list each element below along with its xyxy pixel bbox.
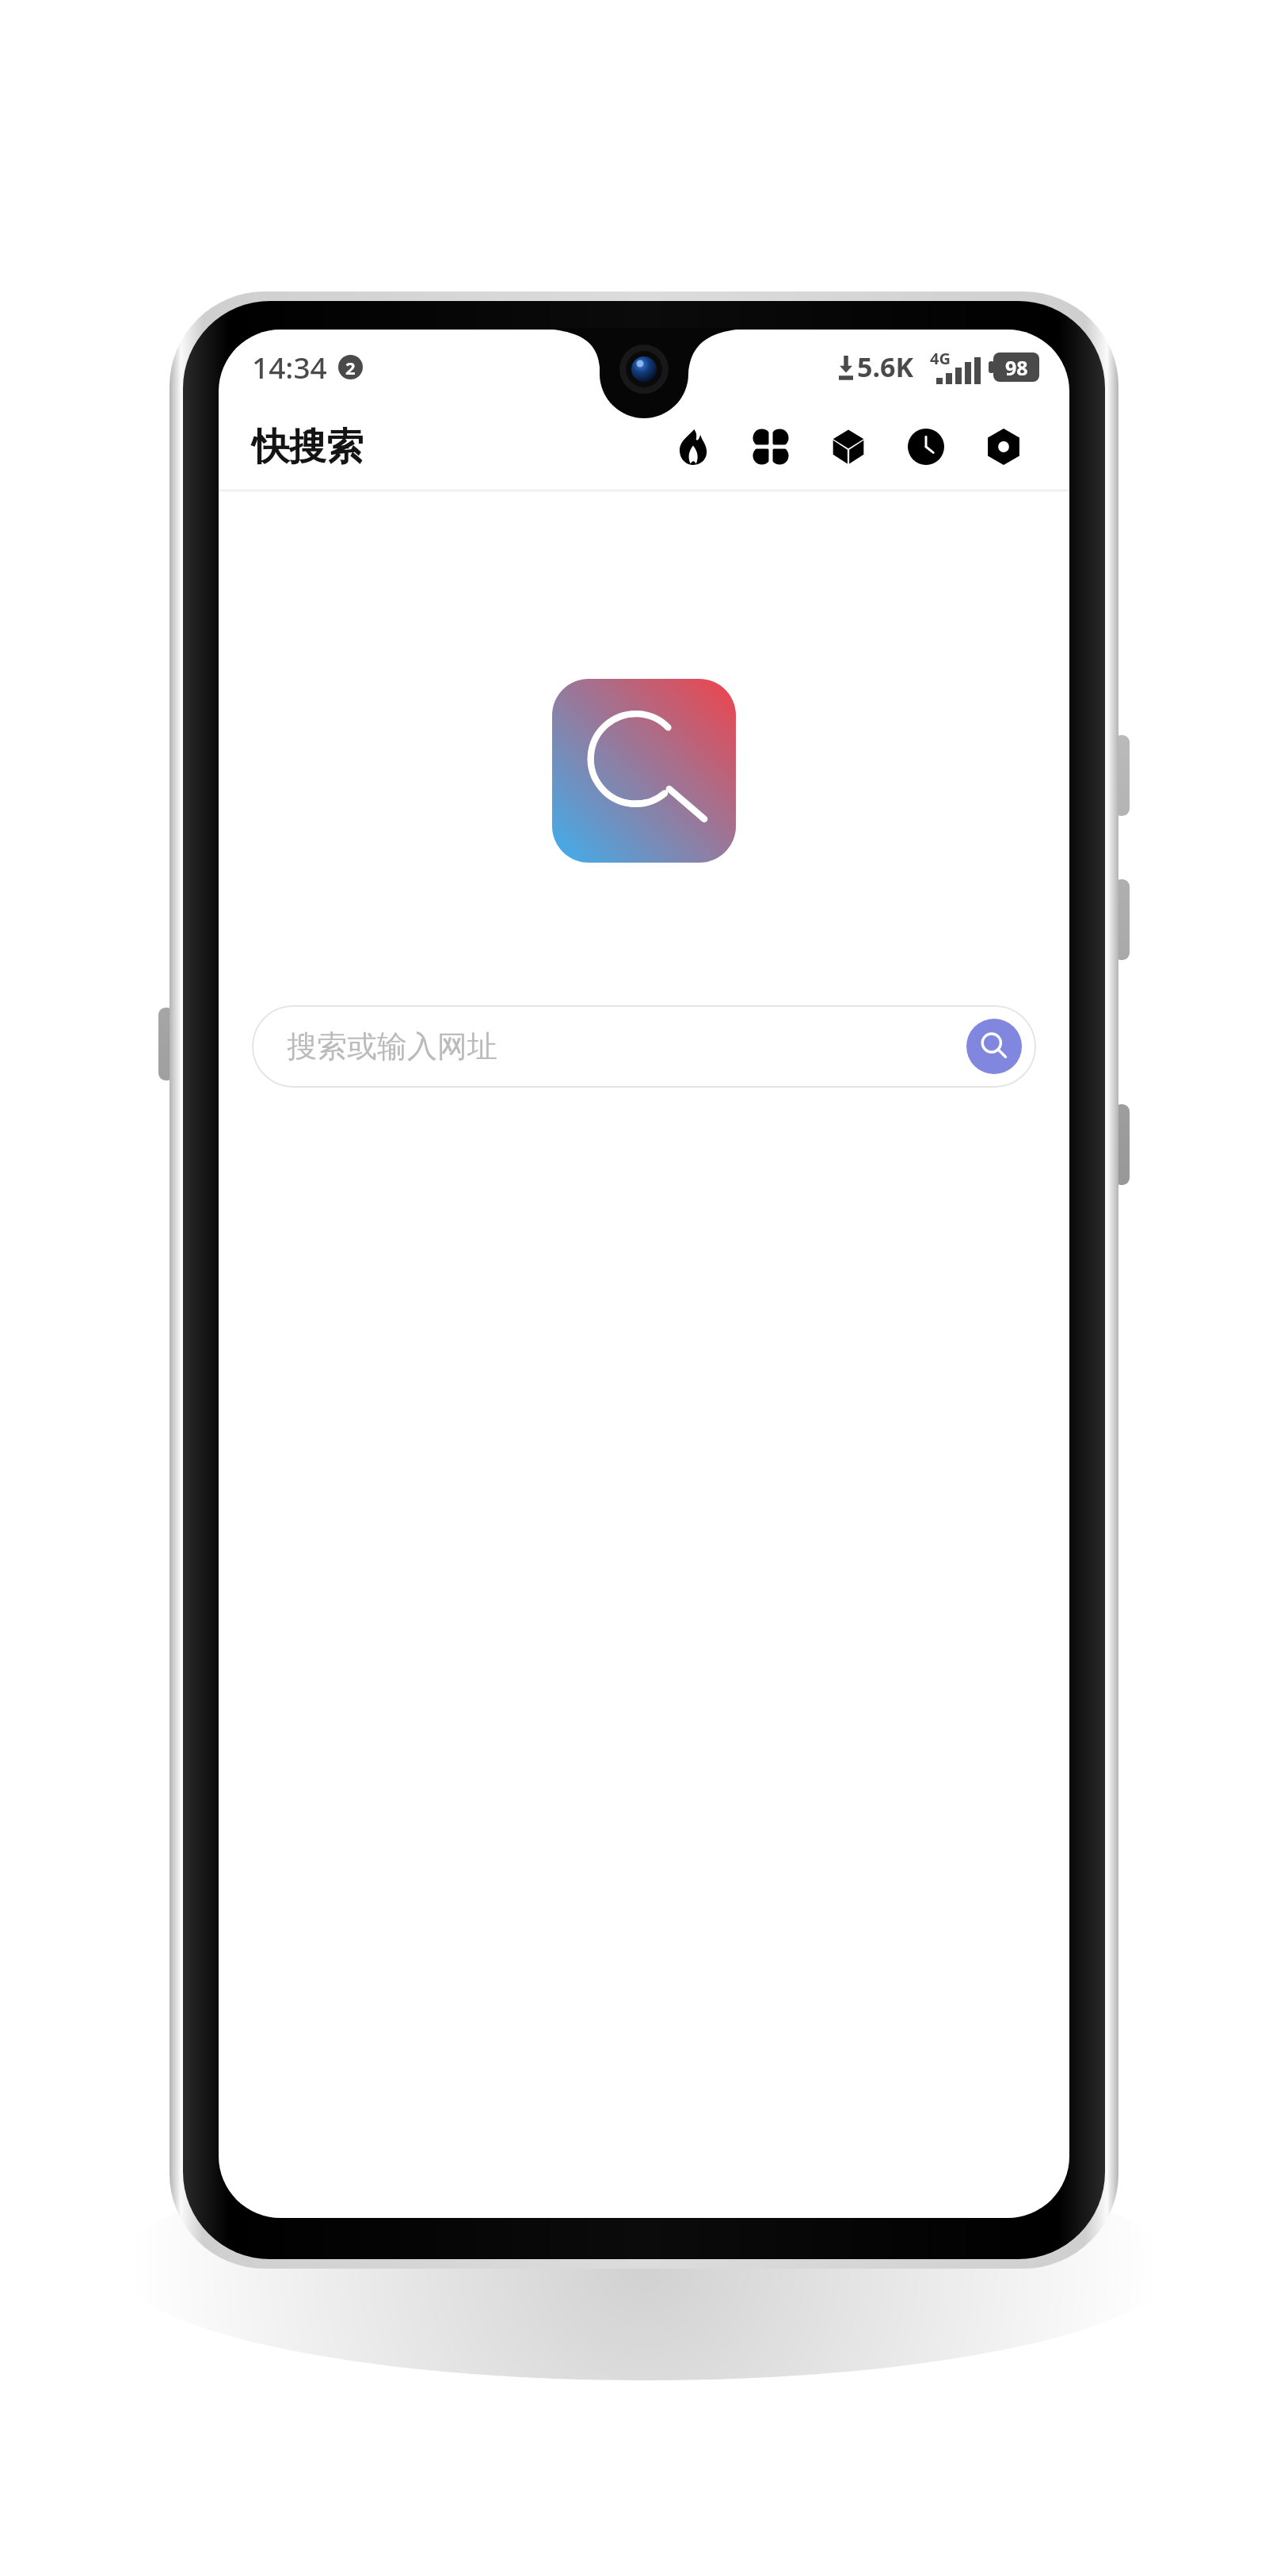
- button[interactable]: Apps: [732, 407, 810, 486]
- staticText: 14:34: [252, 347, 327, 387]
- staticText: 98: [1005, 354, 1028, 381]
- staticText: 搜索或输入网址: [287, 1027, 497, 1065]
- button[interactable]: Packages: [810, 407, 887, 486]
- staticText: 4G: [930, 348, 951, 369]
- staticText: 5.6K: [857, 349, 914, 385]
- staticText: 快搜索: [252, 424, 364, 471]
- button[interactable]: History: [887, 407, 965, 486]
- button[interactable]: 搜索或输入网址: [252, 1005, 1036, 1088]
- button[interactable]: Search: [966, 1019, 1022, 1074]
- staticText: 2: [345, 356, 356, 379]
- button[interactable]: App logo: [552, 679, 736, 863]
- button[interactable]: Settings: [965, 407, 1042, 486]
- button[interactable]: Hot: [654, 407, 732, 486]
